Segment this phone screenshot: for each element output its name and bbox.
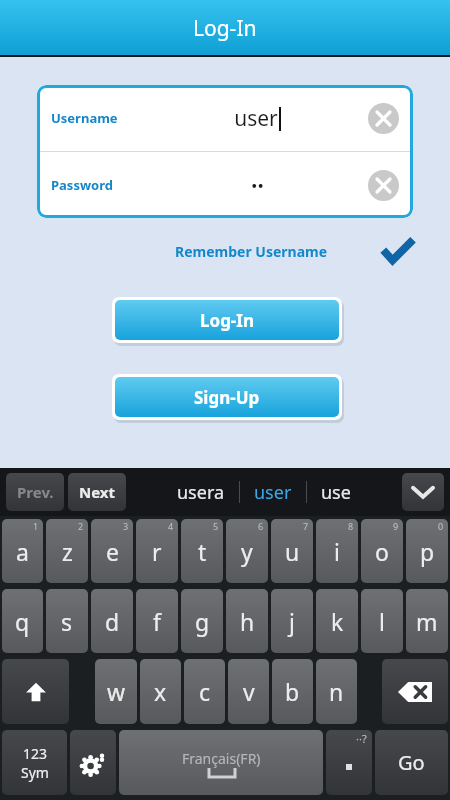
button[interactable]: Shift: [2, 659, 69, 724]
button[interactable]: t: [181, 519, 223, 583]
button[interactable]: 123: [2, 730, 67, 795]
button[interactable]: c: [184, 659, 225, 724]
button[interactable]: Français(FR): [119, 730, 323, 795]
button[interactable]: p: [406, 519, 448, 583]
button[interactable]: x: [140, 659, 181, 724]
staticText: a: [16, 536, 29, 567]
staticText: 2: [78, 520, 84, 532]
staticText: Français(FR): [182, 749, 261, 768]
button[interactable]: f: [136, 589, 178, 653]
staticText: Password: [51, 176, 146, 194]
button[interactable]: m: [406, 589, 448, 653]
staticText: h: [240, 606, 255, 637]
staticText: s: [61, 606, 73, 637]
button[interactable]: h: [226, 589, 268, 653]
staticText: w: [107, 676, 126, 707]
button[interactable]: q: [2, 589, 43, 653]
staticText: 9: [393, 520, 399, 532]
staticText: 5: [213, 520, 219, 532]
staticText: k: [331, 606, 344, 637]
staticText: 0: [438, 520, 444, 532]
staticText: Go: [398, 749, 425, 776]
staticText: Next: [79, 482, 116, 502]
staticText: b: [285, 676, 300, 707]
button[interactable]: Next: [68, 473, 126, 511]
button[interactable]: ··?: [326, 730, 372, 795]
button[interactable]: Backspace: [382, 659, 448, 724]
staticText: Log-In: [200, 309, 254, 332]
button[interactable]: Hide keyboard: [402, 473, 444, 511]
staticText: 4: [168, 520, 174, 532]
staticText: ··?: [356, 731, 367, 746]
button[interactable]: u: [271, 519, 313, 583]
staticText: 7: [303, 520, 309, 532]
other: Shift: [25, 681, 47, 703]
button[interactable]: a: [2, 519, 43, 583]
button[interactable]: Username: [51, 85, 399, 151]
button[interactable]: w: [95, 659, 137, 724]
staticText: g: [195, 606, 210, 637]
staticText: e: [106, 536, 119, 567]
staticText: Remember Username: [175, 242, 328, 261]
staticText: Sym: [21, 763, 49, 782]
staticText: i: [334, 536, 340, 567]
button[interactable]: user: [254, 480, 292, 505]
staticText: z: [62, 536, 73, 567]
staticText: p: [420, 536, 435, 567]
staticText: 123: [23, 744, 48, 763]
button[interactable]: k: [316, 589, 358, 653]
staticText: Sign-Up: [194, 386, 260, 409]
staticText: q: [15, 606, 30, 637]
button[interactable]: j: [271, 589, 313, 653]
button[interactable]: o: [361, 519, 403, 583]
staticText: u: [285, 536, 300, 567]
staticText: Log-In: [193, 14, 257, 43]
button[interactable]: Log-In: [115, 300, 339, 340]
staticText: c: [199, 676, 211, 707]
button[interactable]: d: [91, 589, 133, 653]
staticText: x: [154, 676, 167, 707]
staticText: 6: [258, 520, 264, 532]
button[interactable]: Clear Password: [368, 170, 399, 201]
button[interactable]: i: [316, 519, 358, 583]
button[interactable]: r: [136, 519, 178, 583]
staticText: j: [289, 606, 295, 637]
staticText: v: [243, 676, 255, 707]
staticText: 8: [348, 520, 354, 532]
button[interactable]: s: [46, 589, 88, 653]
button[interactable]: z: [46, 519, 88, 583]
button[interactable]: Prev.: [6, 473, 64, 511]
button[interactable]: n: [316, 659, 357, 724]
staticText: user: [234, 104, 278, 133]
staticText: ••: [251, 174, 264, 197]
button[interactable]: Clear Username: [368, 103, 399, 134]
button[interactable]: l: [361, 589, 403, 653]
button[interactable]: Password: [51, 152, 399, 218]
button[interactable]: Go: [375, 730, 448, 795]
button[interactable]: e: [91, 519, 133, 583]
staticText: 1: [33, 520, 39, 532]
button[interactable]: y: [226, 519, 268, 583]
button[interactable]: Sign-Up: [115, 377, 339, 417]
staticText: m: [416, 606, 438, 637]
staticText: d: [105, 606, 120, 637]
staticText: f: [153, 606, 161, 637]
staticText: user: [254, 480, 292, 505]
button[interactable]: b: [272, 659, 313, 724]
button[interactable]: Settings and voice input: [70, 730, 116, 795]
button[interactable]: Remember Username: [175, 235, 414, 267]
staticText: use: [321, 480, 351, 505]
staticText: o: [375, 536, 389, 567]
staticText: usera: [177, 480, 225, 505]
staticText: l: [379, 606, 385, 637]
staticText: Prev.: [17, 482, 54, 502]
other: Hide keyboard: [413, 486, 433, 498]
staticText: Username: [51, 109, 146, 127]
staticText: y: [241, 536, 253, 567]
staticText: t: [198, 536, 207, 567]
button[interactable]: v: [228, 659, 269, 724]
button[interactable]: use: [321, 480, 351, 505]
button[interactable]: g: [181, 589, 223, 653]
button[interactable]: usera: [177, 480, 225, 505]
staticText: 3: [123, 520, 129, 532]
